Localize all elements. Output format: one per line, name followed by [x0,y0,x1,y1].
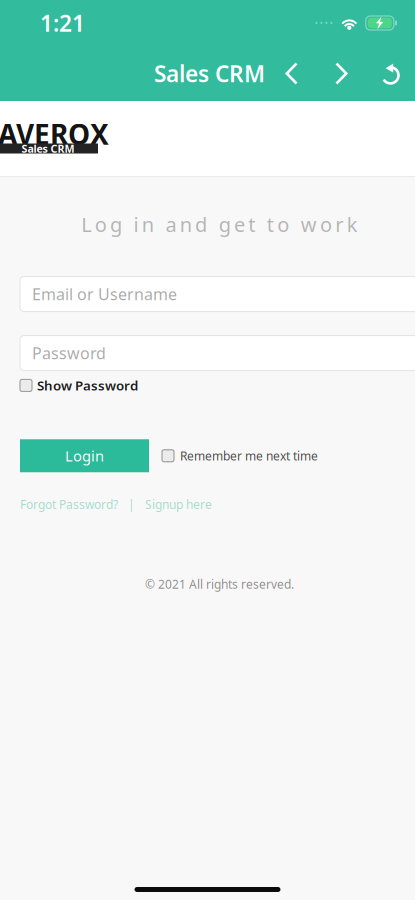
staticText: Signup here [145,496,212,512]
button[interactable]: Login [20,439,149,472]
staticText: Email or Username [32,283,177,305]
staticText: Remember me next time [180,448,318,464]
staticText: Sales CRM [154,58,265,88]
button[interactable]: Reload [365,46,415,101]
staticText: Login [65,446,104,465]
staticText: • • • • [315,18,333,28]
staticText: Password [32,342,106,364]
button[interactable]: Back [265,46,318,101]
staticText: 1:21 [40,8,85,38]
staticText: AVEROX [0,115,109,153]
staticText: Show Password [37,377,138,394]
staticText: | [128,496,135,512]
staticText: © 2021 All rights reserved. [145,576,294,592]
staticText: Sales CRM [21,141,74,156]
staticText: Log in and get to work [81,211,358,238]
button[interactable]: Forgot Password? [20,496,118,512]
staticText: Forgot Password? [20,496,118,512]
button[interactable]: Signup here [145,496,212,512]
button[interactable]: Forward [318,46,365,101]
